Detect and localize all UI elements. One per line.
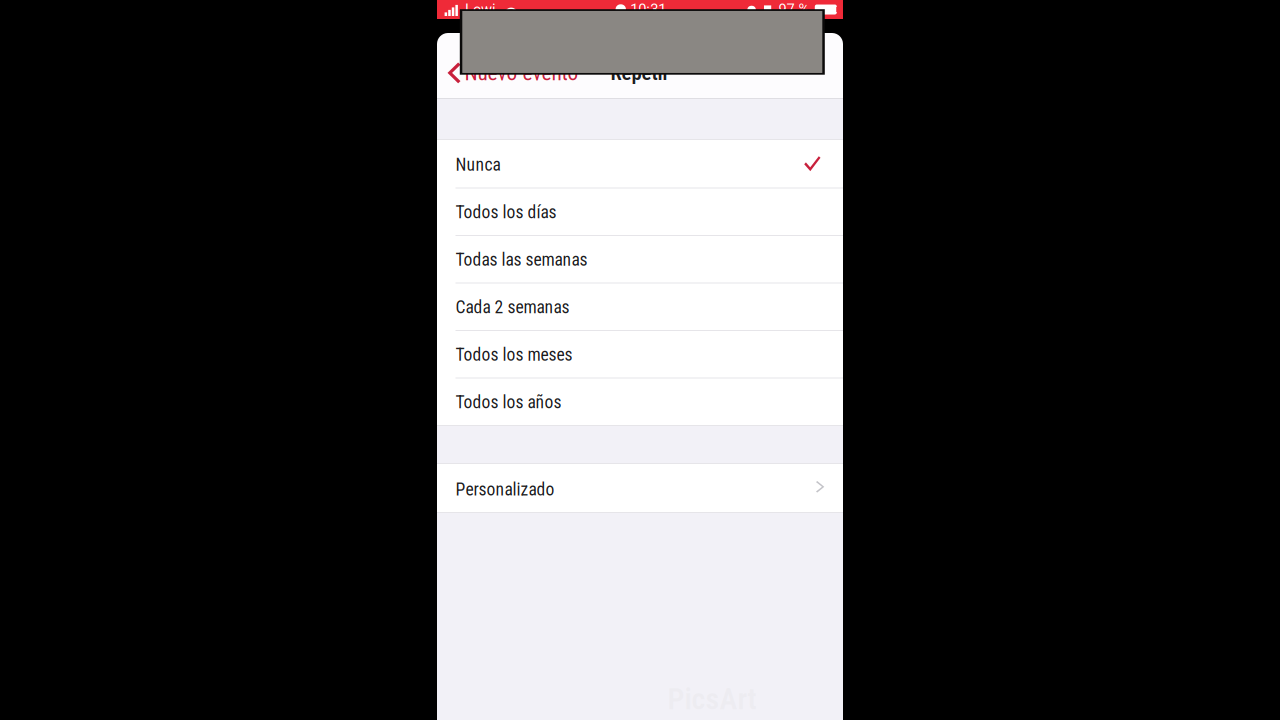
button[interactable]: Todas las semanas bbox=[437, 248, 843, 268]
staticText: Lowi bbox=[465, 1, 496, 18]
staticText: Todas las semanas bbox=[455, 249, 587, 270]
button[interactable]: Todos los días bbox=[437, 200, 843, 221]
staticText: Todos los meses bbox=[455, 344, 572, 365]
staticText: Todos los días bbox=[455, 202, 556, 222]
staticText: Cada 2 semanas bbox=[455, 297, 569, 317]
button[interactable]: Todos los años bbox=[437, 390, 843, 411]
button[interactable]: Nunca bbox=[437, 153, 843, 173]
staticText: 97 % bbox=[779, 1, 810, 18]
staticText: Nunca bbox=[455, 154, 500, 175]
button[interactable]: Nuevo evento bbox=[437, 55, 586, 90]
staticText: Nuevo evento bbox=[464, 60, 578, 85]
staticText: 10:31 bbox=[630, 1, 666, 18]
staticText: Repetir bbox=[610, 61, 669, 85]
button[interactable]: Todos los meses bbox=[437, 343, 843, 363]
button[interactable]: Personalizado bbox=[437, 478, 843, 498]
staticText: Todos los años bbox=[455, 392, 561, 412]
staticText: Personalizado bbox=[455, 479, 554, 500]
button[interactable]: Cada 2 semanas bbox=[437, 295, 843, 316]
